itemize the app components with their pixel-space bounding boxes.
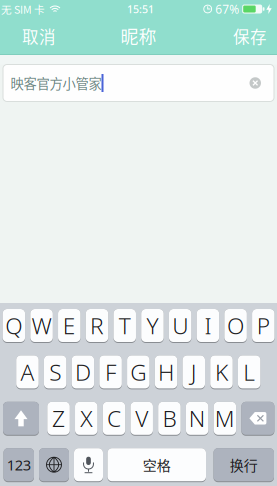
button[interactable]: W — [30, 309, 53, 343]
staticText: R — [90, 310, 104, 340]
button[interactable]: P — [252, 309, 275, 343]
button[interactable]: U — [169, 309, 191, 343]
staticText: Q — [5, 310, 22, 340]
button[interactable]: 映客官方小管家 — [3, 64, 274, 101]
staticText: 取消 — [22, 24, 56, 48]
staticText: M — [215, 403, 235, 433]
staticText: 保存 — [233, 24, 267, 48]
button[interactable] — [241, 402, 274, 436]
button[interactable]: H — [155, 355, 177, 389]
staticText: N — [189, 403, 206, 433]
staticText: D — [75, 357, 91, 387]
staticText: B — [162, 403, 176, 433]
staticText: F — [105, 357, 116, 387]
button[interactable] — [3, 402, 39, 436]
button[interactable] — [39, 448, 69, 482]
staticText: O — [227, 310, 244, 340]
button[interactable]: E — [58, 309, 80, 343]
staticText: 无 SIM 卡 — [1, 1, 45, 17]
button[interactable]: N — [186, 402, 208, 436]
button[interactable]: D — [72, 355, 94, 389]
staticText: J — [191, 357, 197, 387]
staticText: 换行 — [230, 455, 258, 475]
button[interactable]: V — [130, 402, 153, 436]
button[interactable]: B — [158, 402, 181, 436]
staticText: Z — [52, 403, 65, 433]
button[interactable]: 保存 — [233, 24, 277, 48]
staticText: I — [204, 310, 211, 340]
button[interactable]: M — [214, 402, 236, 436]
button[interactable]: K — [210, 355, 233, 389]
button[interactable]: F — [99, 355, 122, 389]
button[interactable]: S — [44, 355, 66, 389]
staticText: A — [20, 357, 34, 387]
staticText: V — [135, 403, 148, 433]
staticText: C — [107, 403, 121, 433]
button[interactable]: Q — [3, 309, 25, 343]
staticText: 15:51 — [127, 2, 154, 16]
staticText: L — [243, 357, 255, 387]
staticText: 123 — [7, 455, 31, 474]
button[interactable]: C — [103, 402, 125, 436]
button[interactable]: X — [75, 402, 97, 436]
staticText: U — [172, 310, 188, 340]
staticText: K — [215, 357, 228, 387]
button[interactable]: R — [86, 309, 108, 343]
button[interactable]: L — [238, 355, 260, 389]
button[interactable]: 换行 — [213, 448, 274, 482]
staticText: H — [158, 357, 174, 387]
staticText: E — [63, 310, 76, 340]
button[interactable]: Y — [141, 309, 164, 343]
staticText: W — [32, 310, 52, 340]
button[interactable]: J — [182, 355, 205, 389]
staticText: 空格 — [143, 455, 171, 475]
button[interactable]: O — [224, 309, 247, 343]
button[interactable]: I — [197, 309, 219, 343]
staticText: G — [130, 357, 146, 387]
button[interactable]: 取消 — [0, 24, 56, 48]
button[interactable] — [74, 448, 103, 482]
staticText: 昵称 — [120, 23, 156, 49]
staticText: S — [49, 357, 61, 387]
staticText: X — [80, 403, 92, 433]
staticText: T — [119, 310, 131, 340]
button[interactable]: T — [113, 309, 136, 343]
button[interactable]: A — [16, 355, 39, 389]
button[interactable]: Z — [47, 402, 70, 436]
button[interactable]: G — [127, 355, 150, 389]
staticText: 映客官方小管家 — [10, 73, 101, 93]
button[interactable]: 空格 — [107, 448, 206, 482]
button[interactable]: 123 — [3, 448, 34, 482]
staticText: P — [257, 310, 270, 340]
staticText: 67% — [212, 1, 242, 17]
staticText: Y — [146, 310, 158, 340]
button[interactable] — [249, 77, 274, 89]
